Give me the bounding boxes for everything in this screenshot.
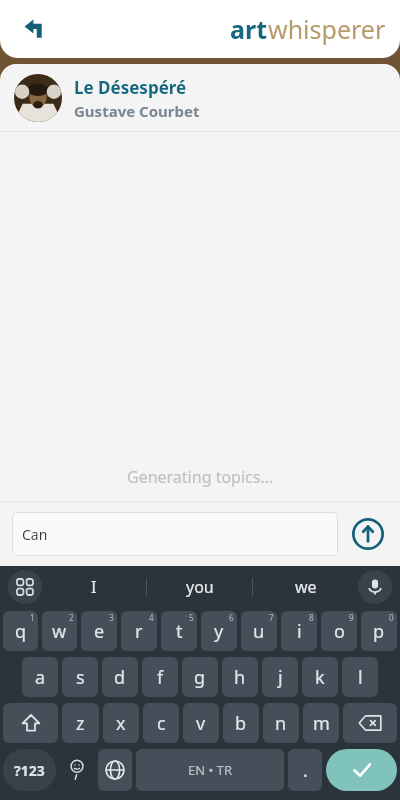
- button[interactable]: x: [103, 703, 139, 743]
- staticText: z: [76, 711, 85, 736]
- staticText: 8: [309, 612, 314, 623]
- staticText: we: [295, 576, 317, 598]
- staticText: 7: [269, 612, 274, 623]
- staticText: 3: [109, 612, 114, 623]
- button[interactable]: m: [303, 703, 339, 743]
- staticText: h: [234, 665, 246, 690]
- button[interactable]: w: [42, 611, 77, 651]
- staticText: q: [15, 619, 27, 644]
- button[interactable]: a: [22, 657, 58, 697]
- staticText: g: [194, 665, 206, 690]
- button[interactable]: i: [281, 611, 317, 651]
- staticText: 1: [30, 612, 35, 623]
- button[interactable]: Shift: [3, 703, 58, 743]
- button[interactable]: Backspace: [343, 703, 397, 743]
- staticText: Le Désespéré: [74, 76, 187, 99]
- staticText: l: [358, 665, 363, 690]
- button[interactable]: Can: [12, 512, 338, 556]
- staticText: c: [157, 711, 166, 736]
- staticText: s: [76, 665, 85, 690]
- staticText: y: [214, 619, 224, 644]
- staticText: x: [116, 711, 126, 736]
- staticText: n: [275, 711, 287, 736]
- staticText: .: [303, 758, 308, 783]
- staticText: r: [135, 619, 143, 644]
- staticText: m: [313, 711, 330, 736]
- button[interactable]: Back: [14, 7, 58, 51]
- button[interactable]: f: [142, 657, 178, 697]
- button[interactable]: h: [222, 657, 258, 697]
- button[interactable]: EN • TR: [136, 749, 284, 791]
- button[interactable]: o: [321, 611, 357, 651]
- staticText: I: [91, 576, 97, 598]
- button[interactable]: k: [302, 657, 338, 697]
- staticText: k: [315, 665, 325, 690]
- button[interactable]: n: [263, 703, 299, 743]
- button[interactable]: Emoji: [60, 749, 94, 791]
- staticText: v: [196, 711, 206, 736]
- button[interactable]: b: [223, 703, 259, 743]
- staticText: b: [235, 711, 247, 736]
- staticText: Can: [22, 525, 48, 544]
- button[interactable]: Toolbar: [8, 570, 42, 604]
- button[interactable]: u: [241, 611, 277, 651]
- button[interactable]: t: [161, 611, 197, 651]
- button[interactable]: .: [288, 749, 322, 791]
- button[interactable]: s: [62, 657, 98, 697]
- staticText: 6: [229, 612, 234, 623]
- button[interactable]: l: [342, 657, 378, 697]
- staticText: 5: [189, 612, 194, 623]
- staticText: Gustave Courbet: [74, 101, 200, 121]
- button[interactable]: Le Désespéré: [14, 64, 400, 132]
- button[interactable]: I: [42, 566, 146, 608]
- button[interactable]: q: [3, 611, 38, 651]
- staticText: 2: [69, 612, 74, 623]
- staticText: EN • TR: [188, 761, 233, 779]
- button[interactable]: d: [102, 657, 138, 697]
- button[interactable]: e: [81, 611, 117, 651]
- button[interactable]: Send: [348, 514, 388, 554]
- button[interactable]: p: [361, 611, 397, 651]
- button[interactable]: j: [262, 657, 298, 697]
- staticText: f: [157, 665, 164, 690]
- staticText: j: [278, 665, 283, 690]
- staticText: ?123: [14, 761, 45, 780]
- button[interactable]: Enter: [326, 749, 397, 791]
- button[interactable]: r: [121, 611, 157, 651]
- staticText: 0: [389, 612, 394, 623]
- staticText: Generating topics...: [127, 466, 274, 488]
- button[interactable]: y: [201, 611, 237, 651]
- button[interactable]: ?123: [3, 749, 56, 791]
- staticText: o: [334, 619, 345, 644]
- button[interactable]: z: [62, 703, 99, 743]
- staticText: w: [52, 619, 67, 644]
- staticText: i: [297, 619, 302, 644]
- staticText: e: [94, 619, 105, 644]
- staticText: 4: [149, 612, 154, 623]
- staticText: you: [186, 576, 214, 598]
- button[interactable]: Change language: [98, 749, 132, 791]
- button[interactable]: Voice input: [358, 570, 392, 604]
- staticText: whisperer: [268, 12, 386, 46]
- staticText: a: [35, 665, 46, 690]
- button[interactable]: v: [183, 703, 219, 743]
- staticText: u: [253, 619, 265, 644]
- staticText: p: [373, 619, 385, 644]
- staticText: t: [176, 619, 183, 644]
- button[interactable]: you: [147, 566, 252, 608]
- staticText: art: [230, 12, 268, 46]
- button[interactable]: we: [253, 566, 358, 608]
- staticText: d: [114, 665, 126, 690]
- button[interactable]: c: [143, 703, 179, 743]
- button[interactable]: g: [182, 657, 218, 697]
- staticText: 9: [349, 612, 354, 623]
